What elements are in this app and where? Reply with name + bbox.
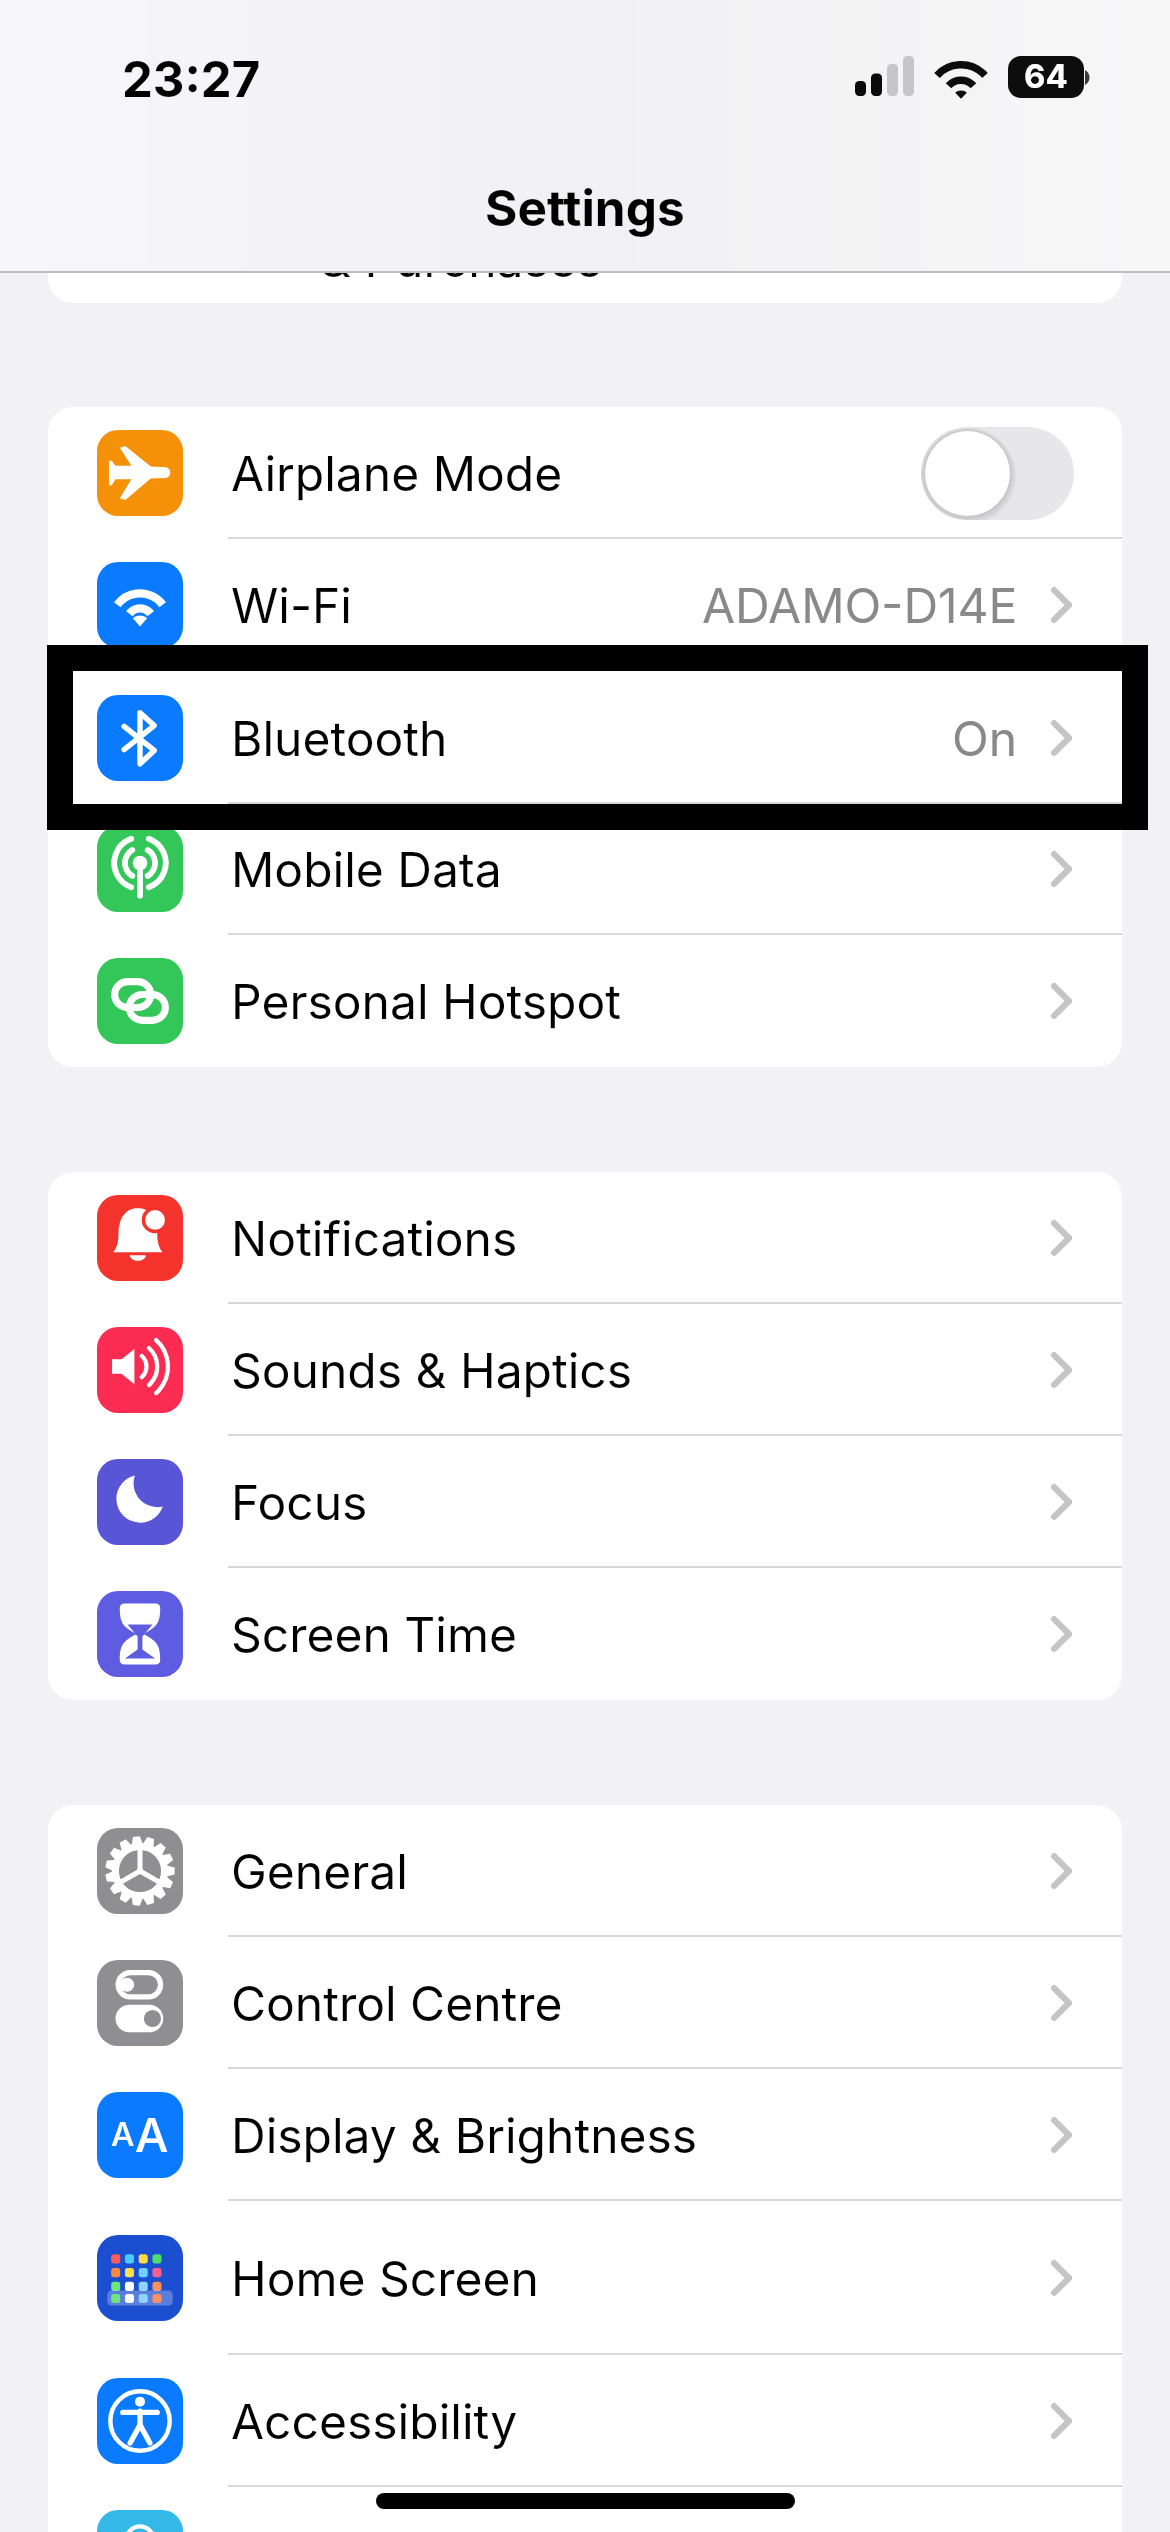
button[interactable]: Mobile Data (48, 803, 1122, 935)
staticText: Mobile Data (231, 840, 502, 898)
staticText: Screen Time (231, 1605, 517, 1663)
button[interactable]: Airplane Mode toggle (921, 427, 1074, 520)
button[interactable]: A (48, 2069, 1122, 2201)
staticText: Personal Hotspot (231, 972, 621, 1030)
staticText: 64 (1024, 56, 1068, 96)
staticText: Notifications (231, 1209, 518, 1267)
staticText: Settings (485, 178, 685, 238)
staticText: Wi-Fi (231, 576, 352, 634)
staticText: Focus (231, 1473, 368, 1531)
button[interactable]: Personal Hotspot (48, 935, 1122, 1067)
staticText: Accessibility (231, 2392, 518, 2450)
button[interactable]: Bluetooth (48, 671, 1122, 803)
button[interactable]: Accessibility (48, 2355, 1122, 2487)
staticText: & Purchases (320, 230, 603, 288)
button[interactable]: Notifications (48, 1172, 1122, 1304)
button[interactable]: General (48, 1805, 1122, 1937)
button[interactable]: & Purchases (48, 120, 1122, 303)
button[interactable]: Screen Time (48, 1568, 1122, 1700)
button[interactable]: Control Centre (48, 1937, 1122, 2069)
staticText: A (111, 2114, 135, 2154)
staticText: ADAMO-D14E (702, 576, 1018, 634)
button[interactable]: Wallpaper (48, 2487, 1122, 2532)
button[interactable]: Focus (48, 1436, 1122, 1568)
button[interactable]: Home Screen (48, 2201, 1122, 2355)
button[interactable]: Wi-Fi (48, 539, 1122, 671)
staticText: Display & Brightness (231, 2106, 698, 2164)
staticText: 23:27 (122, 50, 261, 109)
staticText: General (231, 1842, 408, 1900)
staticText: Bluetooth (231, 709, 448, 767)
button[interactable]: Bluetooth (48, 671, 1122, 804)
staticText: A (135, 2106, 169, 2163)
button[interactable]: Airplane Mode (48, 407, 1122, 539)
staticText: Control Centre (231, 1974, 563, 2032)
staticText: Sounds & Haptics (231, 1341, 633, 1399)
button[interactable]: Sounds & Haptics (48, 1304, 1122, 1436)
staticText: On (952, 709, 1018, 767)
staticText: Airplane Mode (231, 444, 563, 502)
staticText: On (952, 708, 1018, 766)
staticText: Home Screen (231, 2249, 539, 2307)
staticText: Bluetooth (231, 708, 448, 766)
